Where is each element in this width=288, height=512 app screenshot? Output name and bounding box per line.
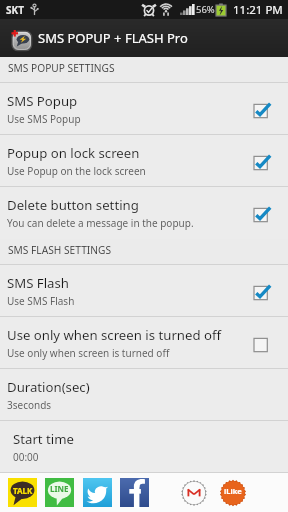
button[interactable]: Use only when screen is turned off xyxy=(0,317,288,369)
button[interactable]: Twitter xyxy=(83,478,112,507)
staticText: LINE xyxy=(50,483,69,494)
staticText: SMS Popup xyxy=(7,92,78,110)
staticText: Duration(sec) xyxy=(7,378,90,396)
staticText: iLike xyxy=(224,486,242,496)
button[interactable]: Delete button setting xyxy=(0,187,288,239)
staticText: Use only when screen is turned off xyxy=(7,326,222,344)
staticText: 56% xyxy=(196,3,215,16)
button[interactable]: Popup on lock screen xyxy=(0,135,288,187)
button[interactable]: Facebook xyxy=(120,478,149,507)
staticText: 11:21 PM xyxy=(233,2,283,18)
staticText: TALK xyxy=(13,485,33,496)
button[interactable]: Duration(sec) xyxy=(0,369,288,421)
staticText: Popup on lock screen xyxy=(7,144,140,162)
staticText: Use Popup on the lock screen xyxy=(7,164,146,178)
button[interactable]: iLike xyxy=(219,479,247,507)
staticText: SMS Flash xyxy=(7,274,69,292)
staticText: Use SMS Popup xyxy=(7,112,81,126)
staticText: SMS POPUP + FLASH Pro xyxy=(38,29,188,47)
staticText: 00:00 xyxy=(13,450,39,464)
staticText: SMS POPUP SETTINGS xyxy=(8,61,115,75)
button[interactable]: Kakao Talk xyxy=(8,478,37,507)
button[interactable]: SMS Flash xyxy=(0,265,288,317)
staticText: You can delete a message in the popup. xyxy=(7,216,194,230)
staticText: SKT xyxy=(6,3,24,17)
staticText: SMS FLASH SETTINGS xyxy=(8,243,111,257)
button[interactable]: LINE xyxy=(45,478,74,507)
staticText: Use only when screen is turned off xyxy=(7,346,170,360)
staticText: Start time xyxy=(13,430,74,448)
staticText: Use SMS Flash xyxy=(7,294,75,308)
button[interactable]: Start time xyxy=(0,421,288,473)
button[interactable]: SMS Popup xyxy=(0,83,288,135)
button[interactable]: Gmail xyxy=(180,479,208,507)
staticText: Delete button setting xyxy=(7,196,139,214)
staticText: 3seconds xyxy=(7,398,52,412)
